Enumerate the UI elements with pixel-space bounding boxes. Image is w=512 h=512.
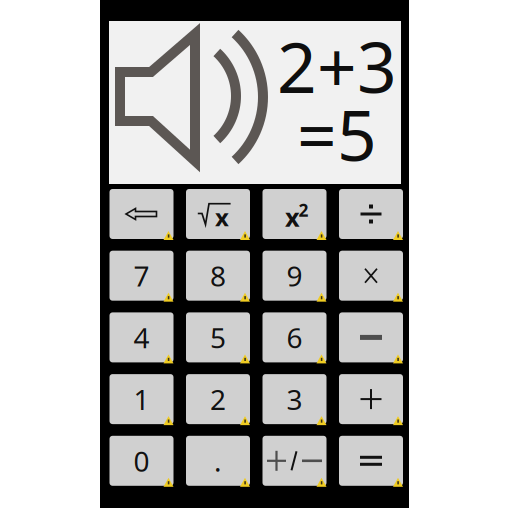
button[interactable]: Multiply: [339, 251, 403, 301]
staticText: =5: [297, 88, 377, 180]
staticText: 7: [133, 257, 149, 294]
button[interactable]: Minus: [339, 312, 403, 362]
staticText: 5: [210, 319, 226, 356]
staticText: 8: [210, 257, 226, 294]
button[interactable]: 5: [186, 312, 250, 362]
staticText: 9: [286, 257, 302, 294]
button[interactable]: Plus or minus: [262, 436, 326, 486]
button[interactable]: 1: [109, 374, 173, 424]
button[interactable]: Square root: [186, 189, 250, 239]
button[interactable]: 7: [109, 251, 173, 301]
staticText: 1: [133, 380, 149, 418]
button[interactable]: 6: [262, 312, 326, 362]
staticText: .: [214, 442, 222, 479]
button[interactable]: Squared: [262, 189, 326, 239]
staticText: 3: [286, 380, 302, 418]
button[interactable]: Backspace: [109, 189, 173, 239]
staticText: x: [285, 200, 300, 234]
button[interactable]: Equals: [339, 436, 403, 486]
button[interactable]: Decimal point: [186, 436, 250, 486]
staticText: 2+3: [277, 20, 397, 112]
staticText: 2: [210, 380, 226, 418]
staticText: x: [215, 201, 229, 233]
button[interactable]: 0: [109, 436, 173, 486]
button[interactable]: Divide: [339, 189, 403, 239]
button[interactable]: 2: [186, 374, 250, 424]
button[interactable]: 8: [186, 251, 250, 301]
button[interactable]: Plus: [339, 374, 403, 424]
staticText: 2: [298, 198, 308, 221]
button[interactable]: 9: [262, 251, 326, 301]
button[interactable]: 3: [262, 374, 326, 424]
staticText: 4: [133, 319, 149, 356]
staticText: 0: [133, 442, 149, 479]
staticText: 6: [286, 319, 302, 356]
button[interactable]: 4: [109, 312, 173, 362]
